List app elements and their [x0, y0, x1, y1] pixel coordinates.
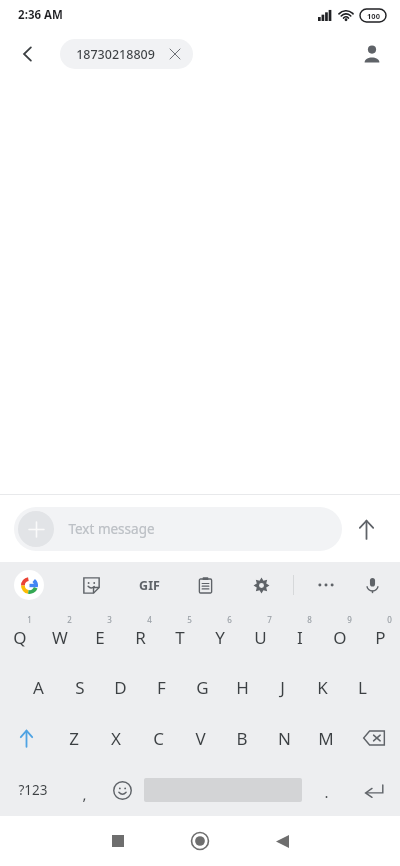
button[interactable]: Contacts	[352, 34, 392, 74]
staticText: W	[52, 626, 68, 649]
staticText: 3	[107, 614, 112, 625]
staticText: F	[157, 676, 166, 699]
staticText: A	[33, 676, 44, 699]
button[interactable]: Emoji	[102, 764, 142, 816]
staticText: H	[236, 676, 249, 699]
button[interactable]: Y	[200, 607, 240, 662]
button[interactable]: N	[263, 712, 305, 764]
staticText: 4	[147, 614, 152, 625]
button[interactable]: Clipboard	[191, 571, 219, 599]
staticText: D	[114, 676, 127, 699]
staticText: .	[324, 782, 329, 802]
staticText: GIF	[139, 577, 160, 594]
staticText: N	[278, 727, 291, 750]
button[interactable]: V	[179, 712, 221, 764]
staticText: M	[318, 727, 334, 750]
button[interactable]: D	[100, 662, 141, 712]
staticText: 2	[67, 614, 72, 625]
button[interactable]: A	[18, 662, 59, 712]
button[interactable]: C	[137, 712, 179, 764]
staticText: S	[75, 676, 85, 699]
button[interactable]: Remove recipient	[167, 46, 183, 62]
staticText: ?123	[18, 781, 48, 799]
button[interactable]: Google search	[14, 570, 44, 600]
staticText: P	[375, 626, 386, 649]
staticText: 2:36 AM	[18, 7, 63, 23]
button[interactable]: W	[40, 607, 80, 662]
button[interactable]: Comma	[66, 764, 102, 816]
staticText: J	[280, 676, 285, 699]
staticText: G	[196, 676, 209, 699]
button[interactable]: U	[240, 607, 280, 662]
button[interactable]: R	[120, 607, 160, 662]
button[interactable]: L	[342, 662, 382, 712]
button[interactable]: ?123	[0, 764, 66, 816]
staticText: 0	[387, 614, 392, 625]
staticText: B	[236, 727, 248, 750]
staticText: Z	[69, 727, 79, 750]
button[interactable]: Q	[0, 607, 40, 662]
staticText: K	[317, 676, 328, 699]
button[interactable]: Send	[342, 505, 390, 553]
staticText: O	[333, 626, 347, 649]
staticText: Text message	[68, 520, 155, 538]
staticText: I	[297, 626, 303, 649]
button[interactable]: Enter	[348, 764, 400, 816]
staticText: 9	[347, 614, 352, 625]
staticText: 100	[367, 11, 380, 21]
staticText: T	[175, 626, 185, 649]
button[interactable]: More options	[312, 571, 340, 599]
staticText: R	[135, 626, 146, 649]
staticText: 6	[227, 614, 232, 625]
staticText: V	[195, 727, 206, 750]
button[interactable]: M	[305, 712, 347, 764]
button[interactable]: Settings	[247, 571, 275, 599]
button[interactable]: F	[141, 662, 182, 712]
button[interactable]: Back	[8, 34, 48, 74]
button[interactable]: T	[160, 607, 200, 662]
button[interactable]: Backspace	[347, 712, 400, 764]
button[interactable]: Back	[254, 816, 310, 866]
button[interactable]: Add attachment	[18, 511, 54, 547]
button[interactable]: S	[59, 662, 100, 712]
staticText: 5	[187, 614, 192, 625]
button[interactable]: Home	[172, 816, 228, 866]
button[interactable]: H	[222, 662, 262, 712]
button[interactable]: I	[280, 607, 320, 662]
staticText: E	[95, 626, 105, 649]
button[interactable]: B	[221, 712, 263, 764]
button[interactable]: Z	[53, 712, 95, 764]
button[interactable]: J	[262, 662, 302, 712]
button[interactable]: E	[80, 607, 120, 662]
staticText: X	[111, 727, 121, 750]
staticText: L	[358, 676, 367, 699]
button[interactable]: O	[320, 607, 360, 662]
button[interactable]: 18730218809	[60, 39, 193, 69]
button[interactable]: Voice input	[358, 571, 386, 599]
staticText: U	[254, 626, 267, 649]
button[interactable]: Period	[304, 764, 348, 816]
staticText: 7	[267, 614, 272, 625]
button[interactable]: Add attachment	[14, 507, 342, 551]
button[interactable]: P	[360, 607, 400, 662]
button[interactable]: K	[302, 662, 342, 712]
button[interactable]: GIF	[133, 569, 165, 601]
staticText: 8	[307, 614, 312, 625]
staticText: 18730218809	[76, 46, 155, 63]
staticText: C	[153, 727, 164, 750]
button[interactable]: Shift	[0, 712, 53, 764]
staticText: ,	[82, 784, 87, 804]
button[interactable]: G	[182, 662, 222, 712]
staticText: 1	[27, 614, 32, 625]
button[interactable]: X	[95, 712, 137, 764]
button[interactable]: Recent apps	[90, 816, 146, 866]
staticText: Y	[215, 626, 225, 649]
staticText: Q	[13, 626, 27, 649]
button[interactable]: Stickers	[77, 571, 105, 599]
